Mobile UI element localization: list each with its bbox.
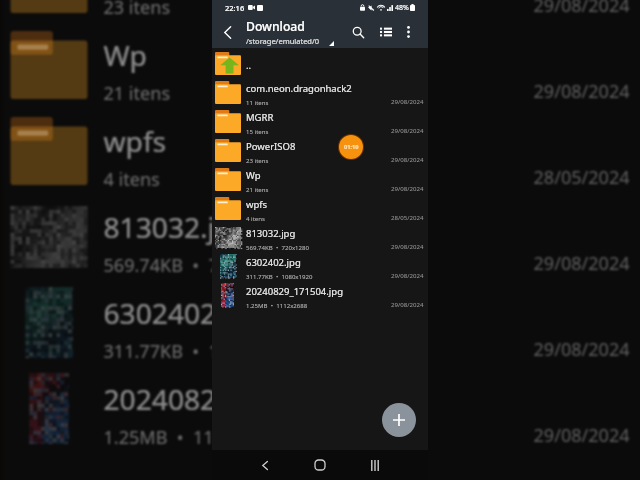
button[interactable]: 813032.jpg — [212, 222, 428, 251]
staticText: 4 itens — [103, 167, 160, 192]
staticText: 29/08/2024 — [533, 251, 630, 276]
button[interactable]: Wp — [212, 164, 428, 193]
button[interactable]: PowerISO8 — [2, 0, 640, 21]
button[interactable]: 813032.jpg — [2, 193, 640, 279]
staticText: PowerISO8 — [246, 140, 296, 153]
staticText: 28/05/2024 — [533, 165, 630, 190]
staticText: 29/08/2024 — [391, 300, 424, 308]
staticText: 11 itens — [246, 98, 269, 106]
button[interactable]: Screen recorder timer — [339, 135, 363, 159]
staticText: 20240829_171504.jpg — [103, 380, 391, 418]
staticText: 29/08/2024 — [533, 79, 630, 104]
staticText: 311.77KB • 1080x1920 — [103, 339, 301, 364]
staticText: 29/08/2024 — [391, 271, 424, 279]
button[interactable]: .. — [212, 48, 428, 77]
button[interactable]: 6302402.jpg — [2, 279, 640, 365]
staticText: 28/05/2024 — [391, 213, 424, 221]
button[interactable]: View mode — [376, 17, 395, 47]
button[interactable]: 20240829_171504.jpg — [2, 365, 640, 451]
staticText: 29/08/2024 — [391, 126, 424, 134]
button[interactable]: wpfs — [212, 193, 428, 222]
button[interactable]: Home — [292, 450, 347, 480]
staticText: 21 itens — [246, 185, 269, 193]
button[interactable]: 20240829_171504.jpg — [212, 280, 428, 309]
staticText: 01:10 — [344, 143, 359, 151]
button[interactable]: com.neon.dragonhack2 — [212, 77, 428, 106]
staticText: wpfs — [103, 122, 166, 160]
button[interactable]: 6302402.jpg — [212, 251, 428, 280]
staticText: 29/08/2024 — [533, 423, 630, 448]
button[interactable]: Search — [341, 17, 376, 47]
staticText: 6302402.jpg — [103, 294, 266, 332]
staticText: 311.77KB • 1080x1920 — [246, 272, 313, 280]
button[interactable]: Wp — [2, 21, 640, 107]
staticText: 569.74KB • 720x1280 — [103, 253, 290, 278]
staticText: 23 itens — [246, 156, 269, 164]
button[interactable]: Add — [382, 403, 416, 437]
staticText: 20240829_171504.jpg — [246, 285, 343, 298]
staticText: 29/08/2024 — [391, 184, 424, 192]
staticText: 22:16 — [225, 3, 245, 13]
staticText: 813032.jpg — [246, 227, 296, 240]
staticText: 21 itens — [103, 81, 170, 106]
staticText: 4 itens — [246, 214, 265, 222]
staticText: 1.25MB • 1112x2688 — [246, 301, 308, 309]
staticText: 23 itens — [103, 0, 170, 20]
button[interactable]: wpfs — [2, 107, 640, 193]
staticText: 6302402.jpg — [246, 256, 301, 269]
staticText: 29/08/2024 — [391, 155, 424, 163]
staticText: com.neon.dragonhack2 — [246, 82, 352, 95]
button[interactable]: More options — [395, 17, 422, 47]
staticText: /storage/emulated/0 — [246, 36, 320, 46]
staticText: .. — [246, 59, 252, 72]
staticText: 29/08/2024 — [533, 0, 630, 18]
staticText: 29/08/2024 — [391, 97, 424, 105]
staticText: 48% — [395, 3, 409, 13]
staticText: MGRR — [246, 111, 274, 124]
staticText: 569.74KB • 720x1280 — [246, 243, 310, 251]
staticText: wpfs — [246, 198, 268, 211]
staticText: Wp — [246, 169, 261, 182]
staticText: 15 itens — [246, 127, 269, 135]
button[interactable]: MGRR — [212, 106, 428, 135]
staticText: 1.25MB • 1112x2688 — [103, 425, 285, 450]
button[interactable]: PowerISO8 — [212, 135, 428, 164]
button[interactable]: Back — [212, 17, 242, 47]
staticText: Download — [246, 18, 305, 35]
staticText: 29/08/2024 — [533, 337, 630, 362]
button[interactable]: Back — [238, 450, 292, 480]
staticText: 813032.jpg — [103, 208, 249, 246]
button[interactable]: Recent apps — [347, 450, 402, 480]
staticText: 29/08/2024 — [391, 242, 424, 250]
staticText: Wp — [103, 36, 147, 74]
